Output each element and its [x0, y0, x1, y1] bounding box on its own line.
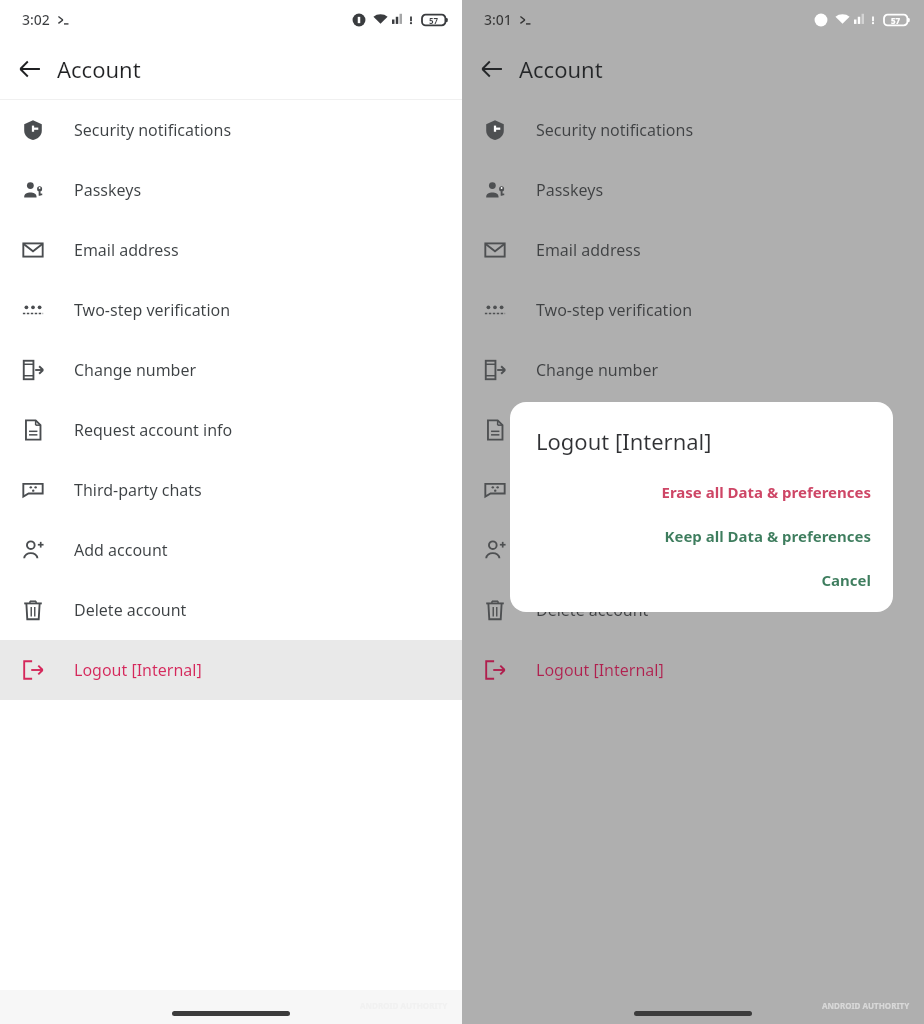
staticText: 57 [891, 15, 901, 26]
staticText: Email address [536, 239, 641, 261]
button[interactable]: Two-step verification [462, 280, 924, 340]
staticText: Change number [74, 359, 197, 381]
button[interactable]: Security notifications [0, 100, 462, 160]
button[interactable]: Keep all Data & preferences [510, 522, 893, 550]
staticText: 3:01 [484, 10, 512, 29]
button[interactable]: Change number [0, 340, 462, 400]
button[interactable]: Change number [462, 340, 924, 400]
staticText: Third-party chats [74, 479, 202, 501]
button[interactable]: Passkeys [0, 160, 462, 220]
button[interactable]: Passkeys [462, 160, 924, 220]
staticText: 3:02 [22, 10, 50, 29]
button[interactable]: Security notifications [462, 100, 924, 160]
staticText: Security notifications [536, 119, 694, 141]
button[interactable]: Two-step verification [0, 280, 462, 340]
staticText: Request account info [536, 419, 695, 441]
button[interactable]: Delete account [462, 580, 924, 640]
button[interactable]: Logout [Internal] [462, 640, 924, 700]
staticText: Erase all Data & preferences [661, 482, 871, 502]
staticText: Logout [Internal] [536, 659, 664, 681]
staticText: Passkeys [536, 179, 604, 201]
staticText: Two-step verification [536, 299, 693, 321]
staticText: Logout [Internal] [74, 659, 202, 681]
button[interactable]: Request account info [0, 400, 462, 460]
button[interactable]: Logout [Internal] [0, 640, 462, 700]
staticText: Third-party chats [536, 479, 664, 501]
button[interactable]: Third-party chats [462, 460, 924, 520]
button[interactable]: Back [8, 47, 52, 91]
staticText: ANDROID AUTHORITY [822, 1000, 910, 1011]
staticText: Request account info [74, 419, 233, 441]
staticText: Account [519, 54, 603, 84]
button[interactable]: Third-party chats [0, 460, 462, 520]
button[interactable]: Email address [0, 220, 462, 280]
button[interactable]: Request account info [462, 400, 924, 460]
staticText: Add account [74, 539, 168, 561]
button[interactable]: Erase all Data & preferences [510, 478, 893, 506]
staticText: 57 [429, 15, 439, 26]
button[interactable]: Email address [462, 220, 924, 280]
staticText: Delete account [74, 599, 187, 621]
staticText: Two-step verification [74, 299, 231, 321]
staticText: Delete account [536, 599, 649, 621]
staticText: Account [57, 54, 141, 84]
staticText: Passkeys [74, 179, 142, 201]
button[interactable]: Add account [0, 520, 462, 580]
staticText: Logout [Internal] [536, 426, 712, 456]
button[interactable]: Back [470, 47, 514, 91]
staticText: Security notifications [74, 119, 232, 141]
staticText: Change number [536, 359, 659, 381]
button[interactable]: Add account [462, 520, 924, 580]
staticText: Keep all Data & preferences [664, 526, 871, 546]
staticText: Cancel [821, 570, 871, 590]
button[interactable]: Delete account [0, 580, 462, 640]
staticText: Email address [74, 239, 179, 261]
button[interactable]: Cancel [510, 566, 893, 594]
